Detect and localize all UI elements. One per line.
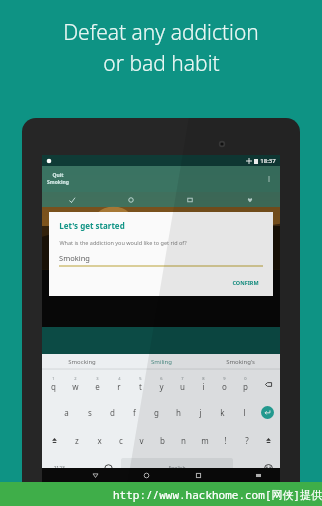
button[interactable]: CONFIRM bbox=[228, 277, 263, 288]
staticText: English bbox=[168, 465, 186, 472]
staticText: z bbox=[75, 435, 79, 446]
staticText: i bbox=[202, 381, 205, 392]
button[interactable]: s bbox=[78, 398, 101, 426]
button[interactable]: h bbox=[167, 398, 189, 426]
button[interactable]: 7 bbox=[172, 370, 193, 398]
staticText: Smocking bbox=[68, 358, 96, 366]
button[interactable]: c bbox=[110, 426, 131, 454]
staticText: DAYS SO FAR bbox=[153, 254, 170, 264]
button[interactable]: 5 bbox=[130, 370, 151, 398]
button[interactable]: More options bbox=[263, 173, 275, 185]
button[interactable]: Hide keyboard bbox=[252, 469, 264, 481]
button[interactable]: , bbox=[77, 454, 98, 482]
staticText: Quit Smoking bbox=[47, 172, 69, 186]
button[interactable]: 9 bbox=[214, 370, 235, 398]
button[interactable]: Shift bbox=[257, 426, 280, 454]
staticText: k bbox=[220, 407, 225, 418]
button[interactable]: b bbox=[152, 426, 173, 454]
staticText: o bbox=[222, 381, 227, 392]
button[interactable]: x bbox=[88, 426, 110, 454]
staticText: x bbox=[97, 435, 102, 446]
staticText: g bbox=[154, 407, 159, 418]
staticText: w bbox=[72, 381, 79, 392]
staticText: u bbox=[180, 381, 185, 392]
staticText: 9 bbox=[223, 376, 226, 381]
button[interactable]: 2 bbox=[64, 370, 86, 398]
button[interactable]: n bbox=[173, 426, 194, 454]
button[interactable]: Recents bbox=[192, 469, 204, 481]
button[interactable]: m bbox=[194, 426, 215, 454]
staticText: 0 bbox=[244, 376, 247, 381]
staticText: 3 bbox=[96, 376, 99, 381]
staticText: b bbox=[160, 435, 165, 446]
button[interactable]: f bbox=[123, 398, 145, 426]
staticText: f bbox=[133, 407, 136, 418]
button[interactable]: k bbox=[211, 398, 233, 426]
staticText: , bbox=[86, 463, 89, 474]
button[interactable]: . bbox=[235, 454, 256, 482]
staticText: ? bbox=[245, 435, 249, 446]
button[interactable]: Language bbox=[98, 454, 119, 482]
button[interactable]: Smocking bbox=[42, 354, 122, 369]
staticText: h bbox=[176, 407, 181, 418]
staticText: Defeat any addiction bbox=[63, 18, 259, 47]
button[interactable]: Share bbox=[250, 255, 273, 278]
button[interactable]: 6 bbox=[151, 370, 172, 398]
button[interactable]: ? bbox=[236, 426, 257, 454]
staticText: 6 bbox=[160, 376, 163, 381]
staticText: a bbox=[64, 407, 69, 418]
button[interactable]: j bbox=[189, 398, 211, 426]
staticText: . bbox=[244, 463, 247, 474]
staticText: CONFIRM bbox=[232, 279, 259, 286]
staticText: t bbox=[139, 381, 142, 392]
button[interactable]: English bbox=[121, 458, 233, 478]
staticText: or bad habit bbox=[103, 49, 220, 78]
button[interactable]: 4 bbox=[108, 370, 130, 398]
button[interactable]: Smiling bbox=[122, 354, 201, 369]
staticText: r bbox=[117, 381, 121, 392]
button[interactable]: Enter bbox=[261, 406, 274, 419]
button[interactable]: g bbox=[145, 398, 167, 426]
button[interactable]: d bbox=[101, 398, 123, 426]
staticText: n bbox=[181, 435, 186, 446]
staticText: j bbox=[199, 407, 202, 418]
button[interactable]: Backspace bbox=[256, 370, 280, 398]
button[interactable]: Emoji bbox=[256, 454, 280, 482]
button[interactable]: ! bbox=[215, 426, 236, 454]
button[interactable]: 8 bbox=[193, 370, 214, 398]
button[interactable]: Smoking's bbox=[201, 354, 280, 369]
staticText: What is the addiction you would like to … bbox=[59, 239, 187, 246]
button[interactable]: a bbox=[55, 398, 78, 426]
button[interactable]: ?123 bbox=[42, 454, 77, 482]
staticText: Let's get started bbox=[59, 220, 125, 231]
button[interactable]: v bbox=[131, 426, 152, 454]
button[interactable]: Tab 4 bbox=[220, 192, 280, 207]
staticText: y bbox=[159, 381, 164, 392]
staticText: e bbox=[95, 381, 100, 392]
button[interactable]: 1 bbox=[42, 370, 64, 398]
staticText: 5 bbox=[139, 376, 142, 381]
staticText: http://www.hackhome.com[网侠]提供 bbox=[113, 487, 322, 502]
button[interactable]: Shift bbox=[42, 426, 66, 454]
button[interactable]: Tab 1 bbox=[42, 192, 101, 207]
staticText: 7 bbox=[181, 376, 184, 381]
staticText: 8 bbox=[202, 376, 205, 381]
staticText: Smoking bbox=[59, 253, 90, 263]
button[interactable]: l bbox=[233, 398, 255, 426]
staticText: s bbox=[88, 407, 92, 418]
staticText: Smiling bbox=[151, 358, 172, 366]
button[interactable]: Tab 3 bbox=[160, 192, 220, 207]
button[interactable]: Quit Smoking bbox=[42, 166, 280, 192]
staticText: ?123 bbox=[54, 465, 65, 472]
staticText: c bbox=[119, 435, 123, 446]
staticText: q bbox=[51, 381, 56, 392]
button[interactable]: 0 bbox=[235, 370, 256, 398]
button[interactable]: Home bbox=[140, 469, 152, 481]
button[interactable]: z bbox=[66, 426, 88, 454]
button[interactable]: Tab 2 bbox=[101, 192, 160, 207]
button[interactable]: 3 bbox=[86, 370, 108, 398]
button[interactable]: Back bbox=[89, 469, 101, 481]
staticText: Smoking's bbox=[226, 358, 255, 366]
staticText: v bbox=[139, 435, 144, 446]
staticText: 4 bbox=[118, 376, 121, 381]
